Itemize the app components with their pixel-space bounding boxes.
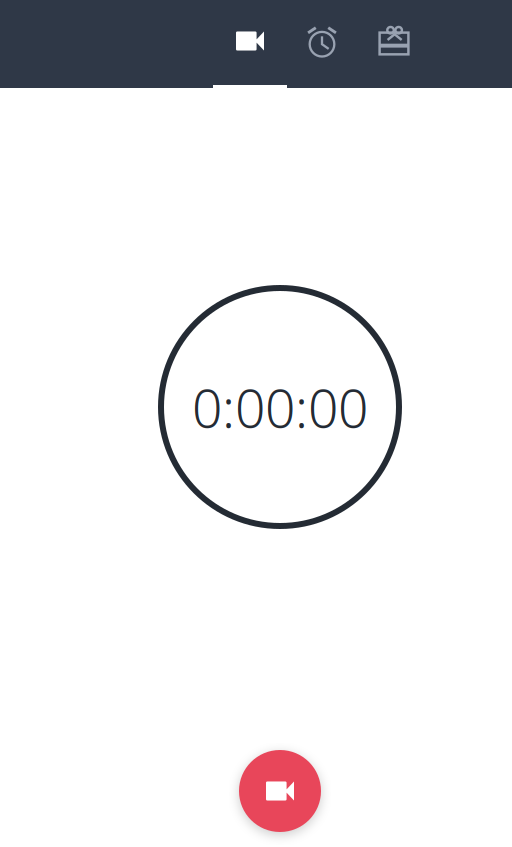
staticText: 0:00:00 <box>192 372 368 442</box>
button[interactable]: Start recording <box>239 750 321 832</box>
button[interactable]: Timer <box>286 0 358 88</box>
button[interactable]: Record <box>214 0 286 88</box>
button[interactable]: Rewards <box>358 0 430 88</box>
